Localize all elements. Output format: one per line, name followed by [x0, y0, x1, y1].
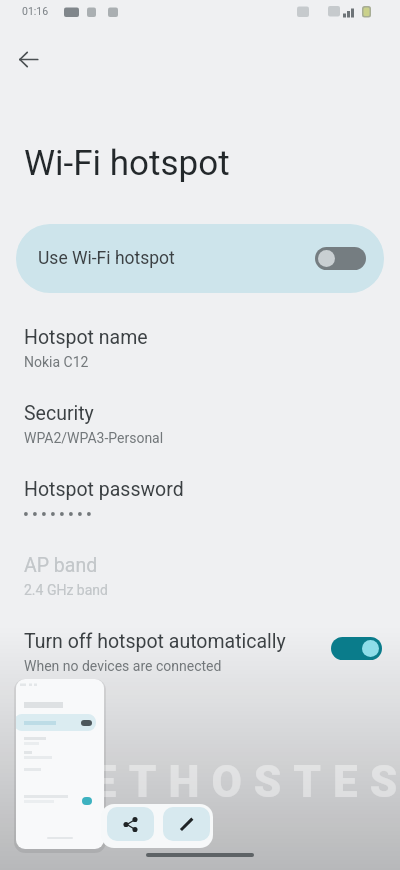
button[interactable]: AP band	[0, 550, 400, 622]
staticText: Wi-Fi hotspot	[24, 143, 230, 184]
staticText: Use Wi-Fi hotspot	[38, 248, 175, 269]
button[interactable]: Edit	[163, 807, 210, 841]
button[interactable]: Use Wi-Fi hotspot	[16, 224, 384, 293]
button[interactable]: Screenshot preview	[16, 679, 104, 849]
staticText: Hotspot name	[24, 326, 148, 349]
staticText: Security	[24, 402, 94, 425]
button[interactable]: Turn off hotspot automatically	[331, 637, 382, 660]
staticText: Nokia C12	[24, 354, 89, 370]
button[interactable]: Back	[6, 37, 50, 81]
staticText: Hotspot password	[24, 478, 184, 501]
staticText: 2.4 GHz band	[24, 582, 108, 598]
staticText: When no devices are connected	[24, 658, 222, 674]
button[interactable]: Share	[107, 807, 154, 841]
staticText: RETHOSTES	[51, 756, 400, 808]
staticText: WPA2/WPA3-Personal	[24, 430, 164, 446]
button[interactable]: Turn off hotspot automatically	[0, 626, 400, 688]
staticText: 01:16	[22, 5, 49, 17]
button[interactable]: Security	[0, 398, 400, 470]
button[interactable]: Use Wi-Fi hotspot	[315, 247, 366, 270]
button[interactable]: Hotspot password	[0, 474, 400, 546]
staticText: Turn off hotspot automatically	[24, 630, 286, 653]
button[interactable]: Hotspot name	[0, 322, 400, 394]
staticText: AP band	[24, 554, 98, 577]
